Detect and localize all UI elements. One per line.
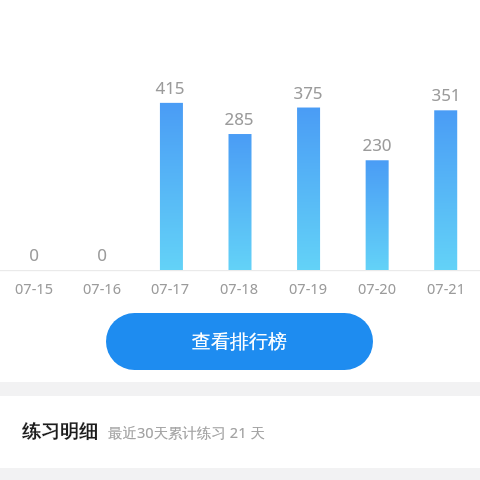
staticText: 07-21 <box>427 278 465 298</box>
staticText: 415 <box>155 76 185 99</box>
staticText: 0 <box>97 243 107 266</box>
staticText: 351 <box>431 83 461 106</box>
staticText: 285 <box>224 107 254 130</box>
staticText: 07-20 <box>358 278 396 298</box>
button[interactable]: 练习明细 <box>0 396 480 468</box>
staticText: 230 <box>362 133 392 156</box>
staticText: 查看排行榜 <box>192 330 287 354</box>
staticText: 07-19 <box>289 278 327 298</box>
staticText: 375 <box>293 81 323 104</box>
staticText: 最近30天累计练习 21 天 <box>108 422 265 442</box>
staticText: 练习明细 <box>22 420 98 444</box>
staticText: 07-16 <box>83 278 121 298</box>
staticText: 07-15 <box>15 278 53 298</box>
button[interactable]: 查看排行榜 <box>106 313 373 370</box>
staticText: 07-18 <box>220 278 258 298</box>
staticText: 07-17 <box>151 278 189 298</box>
staticText: 0 <box>29 243 39 266</box>
